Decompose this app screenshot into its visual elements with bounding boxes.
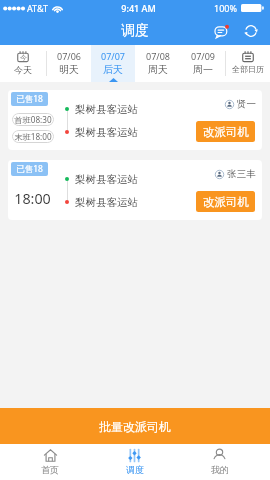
staticText: 首页	[41, 464, 59, 475]
staticText: 已售18	[16, 93, 43, 105]
button[interactable]: 全部日历	[226, 45, 270, 82]
button[interactable]: 调度	[92, 444, 177, 480]
staticText: 07/08	[146, 50, 170, 62]
button[interactable]: 已售18	[8, 90, 262, 150]
button[interactable]: Refresh	[239, 19, 263, 43]
button[interactable]: 07/07	[91, 45, 135, 82]
staticText: AT&T	[27, 2, 48, 14]
staticText: 梨树县客运站	[75, 126, 138, 139]
staticText: 改派司机	[203, 125, 249, 139]
staticText: 梨树县客运站	[75, 196, 138, 209]
staticText: 改派司机	[203, 195, 249, 209]
staticText: 我的	[211, 464, 229, 475]
staticText: 批量改派司机	[99, 419, 171, 434]
button[interactable]: 批量改派司机	[0, 408, 270, 444]
button[interactable]: 已售18	[8, 160, 262, 220]
staticText: 末班18:00	[14, 131, 52, 142]
staticText: 今天	[14, 64, 32, 75]
staticText: 18:00	[14, 189, 51, 208]
button[interactable]: 改派司机	[196, 121, 255, 142]
button[interactable]: Messages	[210, 19, 234, 43]
staticText: 周一	[193, 63, 213, 76]
staticText: 9:41 AM	[121, 2, 156, 14]
staticText: 调度	[121, 22, 149, 40]
button[interactable]: 07/09	[180, 45, 225, 82]
staticText: 周天	[148, 63, 168, 76]
staticText: 首班08:30	[14, 114, 52, 125]
staticText: 07/06	[57, 50, 81, 62]
button[interactable]: 今	[0, 45, 46, 82]
button[interactable]: 07/08	[135, 45, 180, 82]
staticText: 梨树县客运站	[75, 173, 138, 186]
staticText: 07/09	[191, 50, 215, 62]
staticText: 梨树县客运站	[75, 103, 138, 116]
staticText: 张三丰	[227, 168, 256, 180]
button[interactable]: 我的	[177, 444, 262, 480]
staticText: 调度	[126, 464, 144, 475]
staticText: 全部日历	[232, 64, 264, 74]
staticText: 07/07	[101, 50, 125, 62]
staticText: 贤一	[237, 98, 256, 110]
staticText: 明天	[59, 63, 79, 76]
button[interactable]: 07/06	[47, 45, 91, 82]
staticText: 100%	[214, 2, 237, 14]
staticText: 后天	[103, 63, 123, 76]
staticText: 已售18	[16, 163, 43, 175]
button[interactable]: 首页	[8, 444, 92, 480]
staticText: 今	[20, 53, 27, 62]
button[interactable]: 改派司机	[196, 191, 255, 212]
